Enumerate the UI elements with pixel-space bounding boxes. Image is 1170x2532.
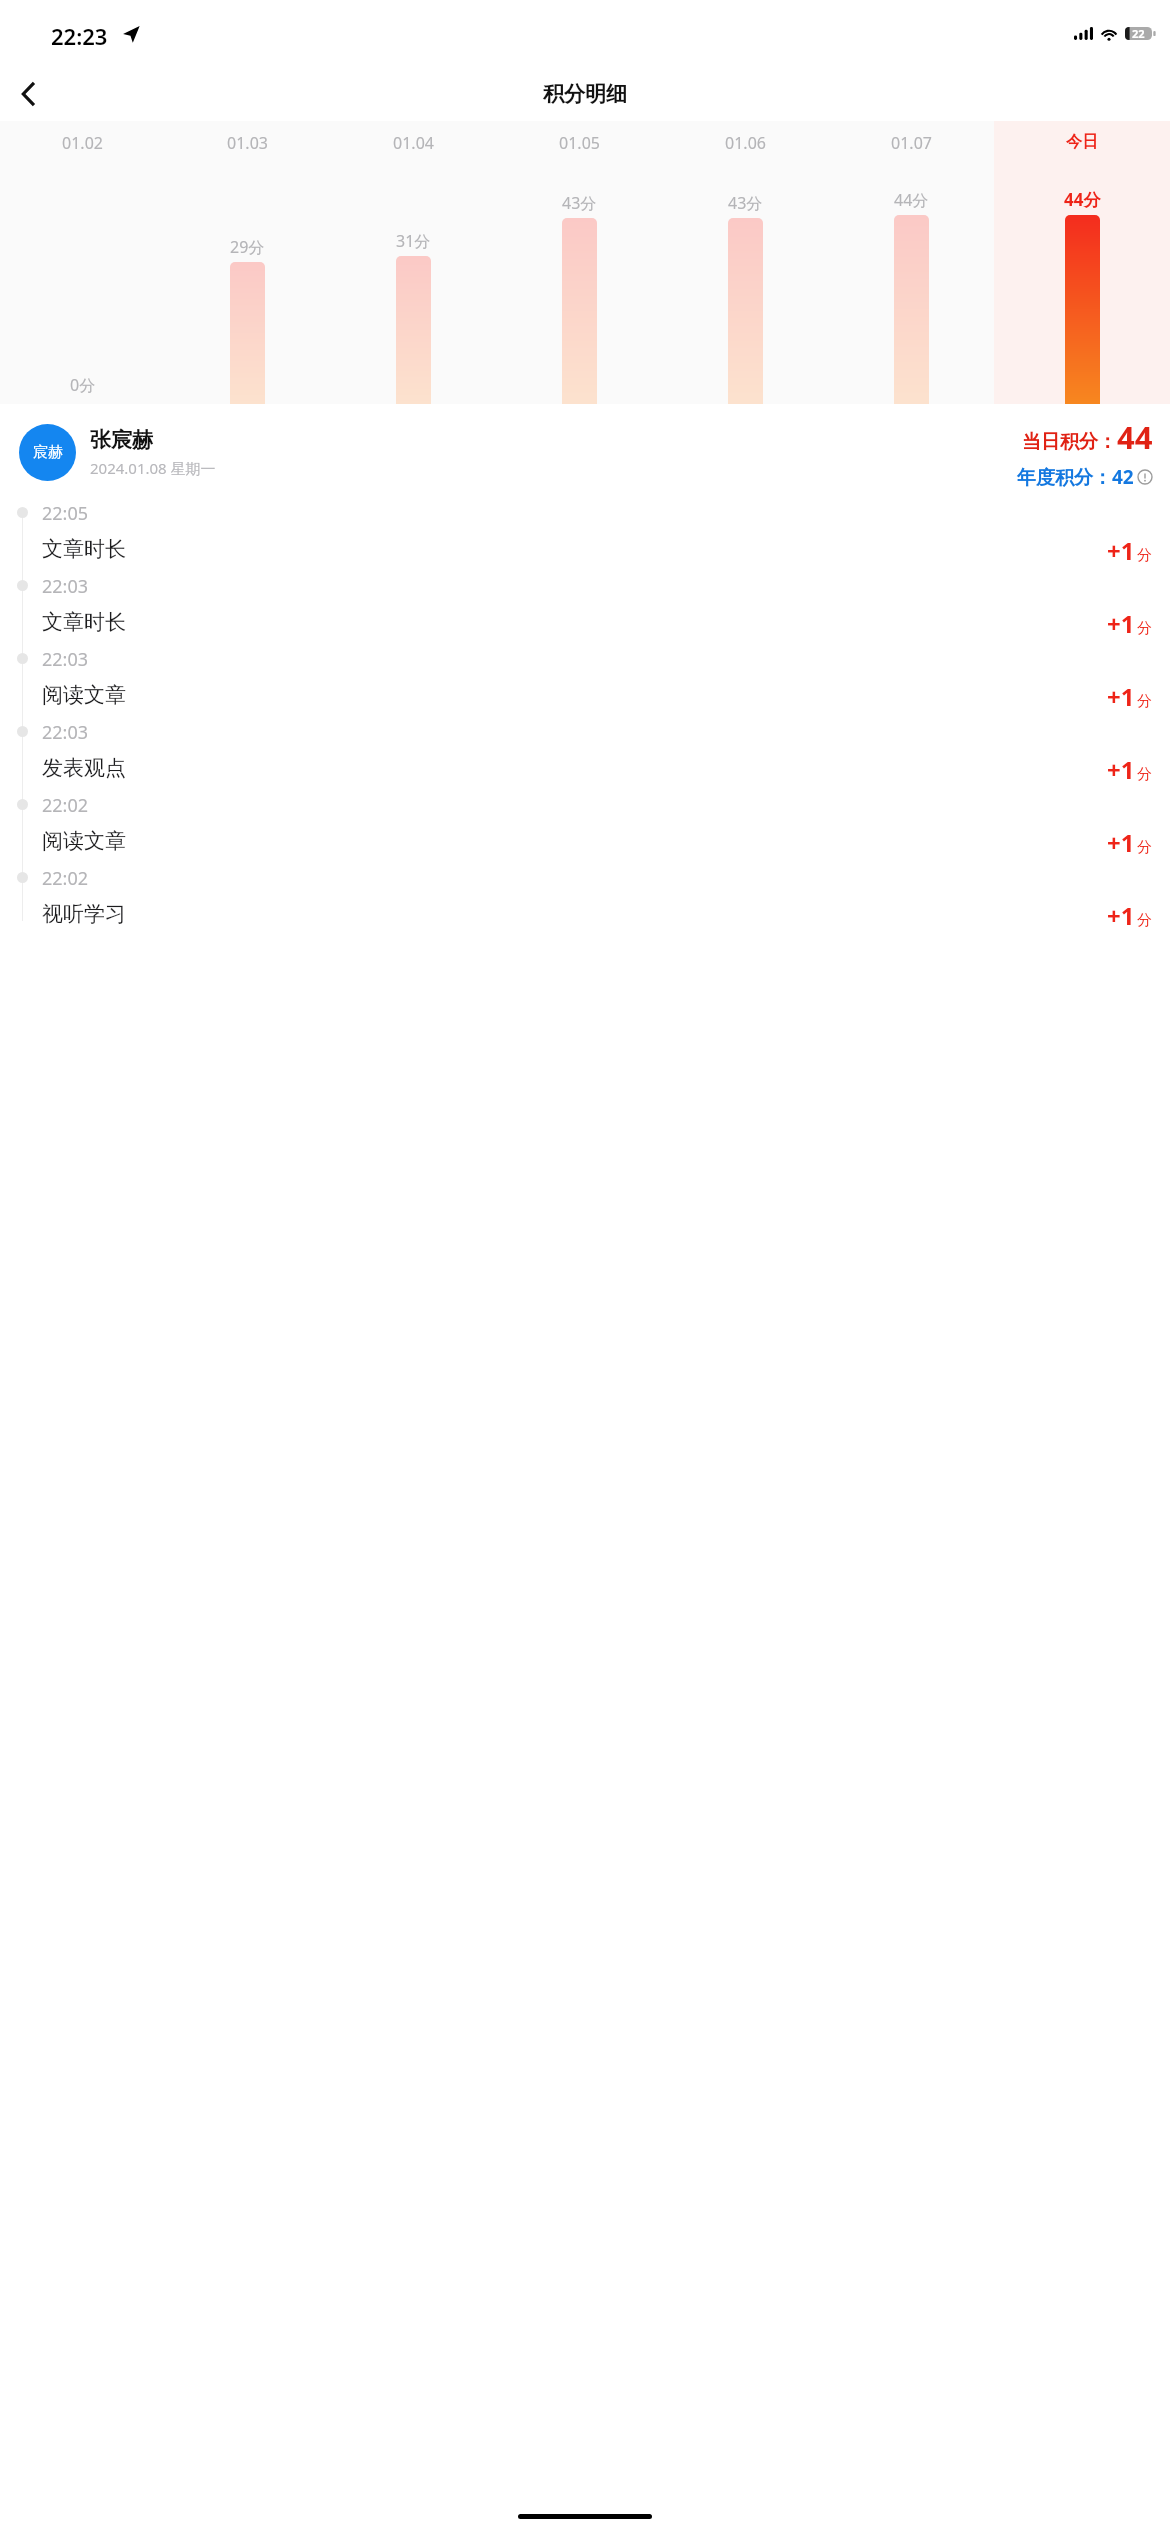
button[interactable]: 01.02	[0, 121, 165, 404]
staticText: +1	[1107, 534, 1135, 567]
staticText: 01.04	[393, 132, 434, 154]
staticText: 分	[1137, 692, 1152, 711]
button[interactable]: 22:03	[0, 574, 1170, 647]
staticText: 01.07	[891, 132, 932, 154]
button[interactable]: 01.04	[330, 121, 496, 404]
staticText: 当日积分：	[1022, 430, 1117, 454]
staticText: 22:03	[42, 647, 89, 672]
staticText: 积分明细	[543, 81, 627, 107]
staticText: 分	[1137, 911, 1152, 930]
button[interactable]: 22:02	[0, 793, 1170, 866]
button[interactable]: Back	[0, 66, 56, 121]
button[interactable]: 01.07	[828, 121, 994, 404]
staticText: +1	[1107, 680, 1135, 713]
button[interactable]: 宸赫	[19, 424, 76, 481]
button[interactable]: 01.03	[165, 121, 330, 404]
staticText: +1	[1107, 826, 1135, 859]
staticText: 分	[1137, 765, 1152, 784]
staticText: 2024.01.08 星期一	[90, 458, 216, 478]
staticText: 01.05	[559, 132, 600, 154]
staticText: 22	[1132, 26, 1145, 41]
staticText: 22:23	[51, 21, 108, 51]
staticText: 22:03	[42, 720, 89, 745]
staticText: 29分	[230, 236, 265, 258]
button[interactable]: 22:02	[0, 866, 1170, 921]
button[interactable]: 今日	[994, 121, 1170, 404]
staticText: 44	[1117, 416, 1153, 458]
staticText: 宸赫	[33, 443, 63, 462]
staticText: +1	[1107, 607, 1135, 640]
staticText: 22:02	[42, 866, 89, 891]
staticText: 01.03	[227, 132, 268, 154]
staticText: 文章时长	[42, 536, 126, 562]
staticText: 发表观点	[42, 755, 126, 781]
staticText: 阅读文章	[42, 682, 126, 708]
staticText: 今日	[1066, 132, 1098, 152]
button[interactable]: 22:03	[0, 720, 1170, 793]
staticText: 22:05	[42, 501, 89, 526]
button[interactable]: 01.05	[496, 121, 662, 404]
button[interactable]: 22:05	[0, 501, 1170, 574]
staticText: 43分	[562, 192, 597, 214]
staticText: 01.02	[62, 132, 103, 154]
staticText: 43分	[728, 192, 763, 214]
staticText: 44分	[894, 189, 929, 211]
staticText: 张宸赫	[90, 427, 153, 453]
staticText: 文章时长	[42, 609, 126, 635]
staticText: 阅读文章	[42, 828, 126, 854]
button[interactable]: 年度积分：42	[1017, 464, 1153, 490]
staticText: 01.06	[725, 132, 766, 154]
staticText: 分	[1137, 546, 1152, 565]
staticText: 年度积分：42	[1017, 464, 1134, 490]
staticText: +1	[1107, 753, 1135, 786]
staticText: 分	[1137, 838, 1152, 857]
staticText: 视听学习	[42, 901, 126, 927]
staticText: 31分	[396, 230, 431, 252]
staticText: 0分	[70, 374, 96, 396]
staticText: +1	[1107, 899, 1135, 932]
staticText: 44分	[1064, 188, 1101, 211]
button[interactable]: 22:03	[0, 647, 1170, 720]
staticText: 22:02	[42, 793, 89, 818]
staticText: 22:03	[42, 574, 89, 599]
staticText: 分	[1137, 619, 1152, 638]
button[interactable]: 01.06	[662, 121, 828, 404]
